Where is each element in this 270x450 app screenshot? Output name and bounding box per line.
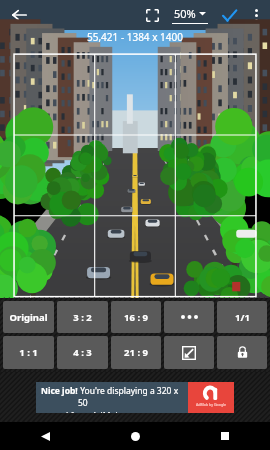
button[interactable]: 1/1: [217, 301, 267, 333]
button[interactable]: 3 : 2: [57, 301, 108, 333]
staticText: 3 : 2: [73, 311, 92, 324]
staticText: 16 : 9: [124, 311, 148, 324]
button[interactable]: 16 : 9: [111, 301, 161, 333]
button[interactable]: Apply: [214, 0, 244, 30]
button[interactable]: 4 : 3: [57, 336, 108, 369]
button[interactable]: 1 : 1: [3, 336, 54, 369]
button[interactable]: Lock aspect ratio: [217, 336, 267, 369]
staticText: Nice job!: [41, 385, 78, 397]
button[interactable]: More ratios: [164, 301, 214, 333]
button[interactable]: 50%: [168, 3, 212, 27]
staticText: AdMob by Google: [196, 402, 227, 407]
button[interactable]: Back: [6, 2, 32, 28]
button[interactable]: Recent apps: [180, 422, 270, 450]
staticText: Original: [9, 311, 48, 324]
button[interactable]: 21 : 9: [111, 336, 161, 369]
button[interactable]: Nice job!: [36, 382, 234, 413]
staticText: 21 : 9: [124, 346, 148, 359]
staticText: You're displaying a 320 x 50: [78, 385, 188, 409]
button[interactable]: Back: [0, 422, 90, 450]
button[interactable]: Fit to screen: [138, 1, 166, 29]
button[interactable]: Original: [3, 301, 54, 333]
button[interactable]: Custom crop: [164, 336, 214, 369]
staticText: 1/1: [235, 311, 250, 324]
staticText: 55,421 - 1384 x 1400: [87, 30, 183, 44]
staticText: 1 : 1: [19, 346, 38, 359]
button[interactable]: Home: [90, 422, 180, 450]
button[interactable]: More options: [244, 3, 268, 27]
staticText: 50%: [174, 6, 196, 21]
staticText: test ad from AdMob.: [41, 410, 124, 413]
staticText: 4 : 3: [73, 346, 92, 359]
